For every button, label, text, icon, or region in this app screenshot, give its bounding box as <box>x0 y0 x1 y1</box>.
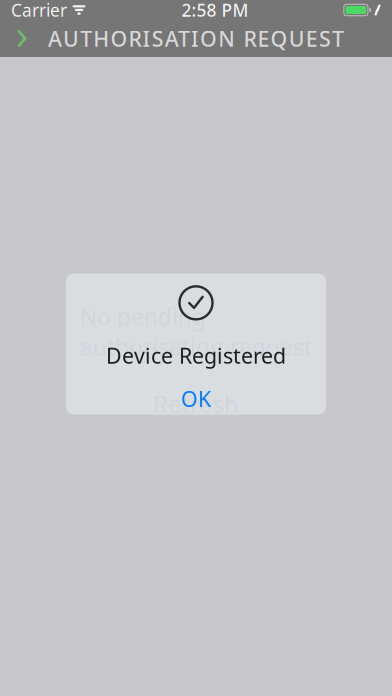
button[interactable]: OK <box>136 382 256 416</box>
staticText: No pending authorisation request <box>80 301 312 362</box>
staticText: AUTHORISATION REQUEST <box>48 24 344 53</box>
staticText: OK <box>181 384 211 413</box>
staticText: Refresh <box>153 388 239 420</box>
staticText: 2:58 PM <box>181 0 248 21</box>
staticText: Device Registered <box>106 341 286 370</box>
button[interactable]: Back <box>0 20 44 57</box>
staticText: Carrier <box>11 0 67 21</box>
